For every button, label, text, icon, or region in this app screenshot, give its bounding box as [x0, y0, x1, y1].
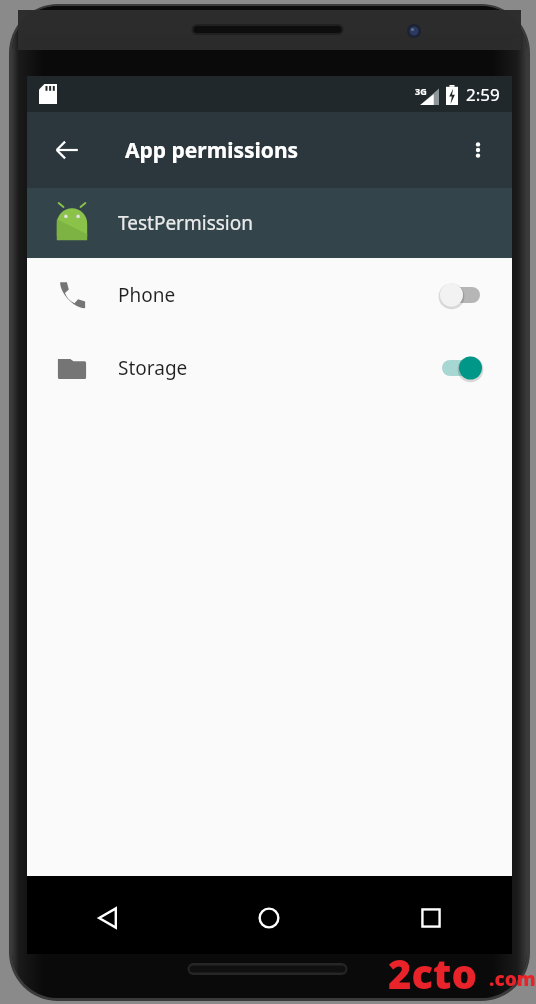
staticText: App permissions: [125, 136, 299, 165]
button[interactable]: Back: [47, 130, 87, 170]
button[interactable]: Off: [432, 275, 490, 315]
button[interactable]: More options: [458, 130, 498, 170]
button[interactable]: On: [432, 348, 490, 388]
staticText: 2cto: [388, 946, 477, 996]
button[interactable]: Storage: [27, 331, 512, 404]
button[interactable]: Recent apps: [350, 882, 512, 954]
staticText: TestPermission: [118, 210, 253, 236]
button[interactable]: TestPermission: [27, 188, 512, 258]
staticText: Storage: [118, 355, 188, 381]
button[interactable]: Back: [27, 882, 188, 954]
staticText: .com: [489, 966, 536, 992]
staticText: Phone: [118, 282, 176, 308]
staticText: 2:59: [466, 83, 500, 106]
staticText: 3G: [415, 85, 427, 97]
button[interactable]: Phone: [27, 258, 512, 331]
button[interactable]: Home: [188, 882, 350, 954]
